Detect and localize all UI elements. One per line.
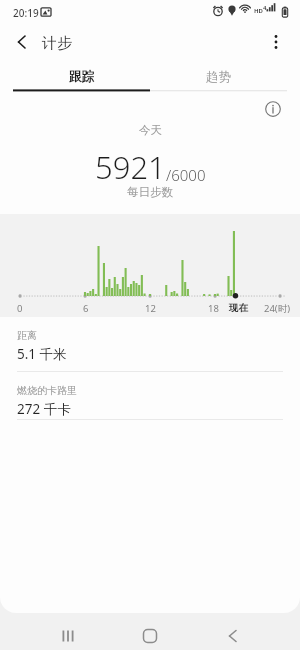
staticText: 现在 bbox=[229, 302, 248, 314]
staticText: 24(时) bbox=[264, 302, 291, 315]
staticText: 计步 bbox=[42, 34, 72, 53]
staticText: 每日步数 bbox=[127, 185, 173, 199]
staticText: 18 bbox=[208, 302, 219, 315]
staticText: HD bbox=[254, 7, 263, 15]
staticText: 趋势 bbox=[206, 69, 231, 85]
button[interactable]: 燃烧的卡路里 bbox=[0, 372, 300, 426]
button[interactable]: 距离 bbox=[0, 317, 300, 371]
staticText: 0 bbox=[17, 302, 23, 315]
button[interactable]: 0 bbox=[0, 214, 300, 317]
button[interactable]: 趋势 bbox=[150, 62, 287, 92]
staticText: 跟踪 bbox=[69, 69, 94, 85]
button[interactable]: More options bbox=[262, 26, 294, 58]
button[interactable]: Back bbox=[6, 26, 38, 58]
staticText: 距离 bbox=[17, 329, 37, 342]
staticText: 6 bbox=[83, 302, 89, 315]
button[interactable]: Information bbox=[259, 95, 287, 123]
button[interactable]: Back bbox=[216, 619, 250, 650]
button[interactable]: Home bbox=[133, 619, 167, 650]
staticText: 12 bbox=[145, 302, 156, 315]
button[interactable]: 跟踪 bbox=[13, 62, 150, 92]
staticText: 20:19 bbox=[13, 6, 39, 20]
staticText: /6000 bbox=[166, 165, 206, 185]
staticText: 4 bbox=[263, 4, 267, 12]
button[interactable]: Recents bbox=[50, 619, 84, 650]
staticText: 燃烧的卡路里 bbox=[17, 384, 77, 397]
staticText: 5921 bbox=[95, 146, 166, 188]
staticText: 272 千卡 bbox=[17, 400, 71, 418]
staticText: 5.1 千米 bbox=[17, 345, 67, 363]
staticText: 今天 bbox=[139, 123, 162, 137]
